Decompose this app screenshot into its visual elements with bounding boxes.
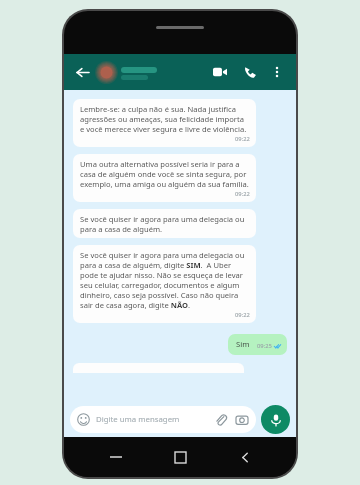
button[interactable]: Home — [167, 444, 193, 470]
button[interactable]: Emoji — [76, 412, 91, 427]
button[interactable]: Uma outra alternativa possível seria ir … — [73, 154, 256, 202]
staticText: Se você quiser ir agora para uma delegac… — [80, 250, 250, 310]
staticText: Sim — [236, 339, 250, 350]
button[interactable]: Emoji — [70, 406, 256, 433]
button[interactable]: More options — [266, 61, 288, 83]
staticText: Digite uma mensagem — [96, 414, 213, 425]
staticText: Uma outra alternativa possível seria ir … — [80, 159, 250, 189]
button[interactable]: Se você quiser ir agora para uma delegac… — [73, 245, 256, 323]
button[interactable]: Sim — [228, 334, 287, 355]
staticText: 09:22 — [235, 135, 250, 143]
button[interactable]: Back — [232, 444, 258, 470]
button[interactable]: Lembre-se: a culpa não é sua. Nada justi… — [73, 99, 256, 147]
button[interactable]: Attach — [213, 412, 229, 428]
staticText: 09:22 — [235, 190, 250, 198]
button[interactable]: Video call — [208, 60, 232, 84]
staticText: Se você quiser ir agora para uma delegac… — [80, 214, 250, 234]
button[interactable]: Camera — [234, 412, 250, 428]
button[interactable]: Voice message — [261, 405, 290, 434]
button[interactable] — [95, 61, 208, 84]
staticText: 09:25 — [257, 342, 272, 350]
staticText: 09:22 — [235, 311, 250, 319]
button[interactable]: Back — [72, 62, 92, 82]
staticText: Lembre-se: a culpa não é sua. Nada justi… — [80, 104, 250, 134]
button[interactable]: Call — [238, 60, 262, 84]
button[interactable]: Se você quiser ir agora para uma delegac… — [73, 209, 256, 238]
button[interactable]: Recents — [103, 444, 129, 470]
